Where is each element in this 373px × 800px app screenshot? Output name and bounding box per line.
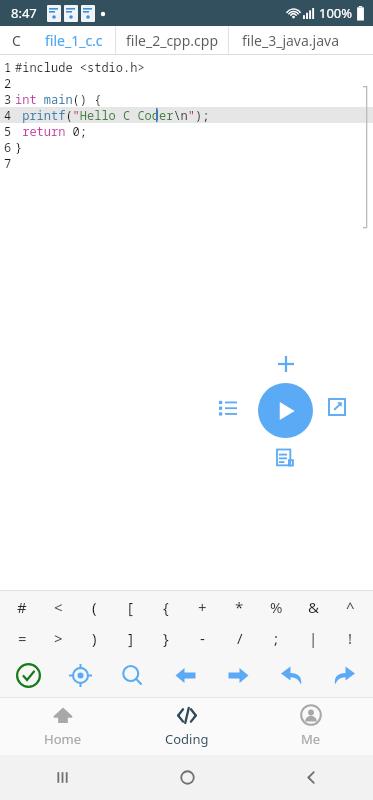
button[interactable]: Run: [258, 383, 313, 438]
button[interactable]: Confirm: [2, 653, 54, 697]
button[interactable]: C: [0, 26, 32, 55]
button[interactable]: Search: [106, 653, 159, 697]
staticText: -: [200, 628, 205, 648]
button[interactable]: #: [4, 591, 40, 622]
button[interactable]: List: [215, 395, 241, 421]
button[interactable]: Me: [249, 697, 373, 755]
staticText: =: [18, 628, 27, 648]
button[interactable]: ): [76, 622, 112, 653]
staticText: 6: [4, 139, 12, 155]
button[interactable]: Document: [272, 445, 298, 471]
staticText: 4: [4, 107, 12, 123]
button[interactable]: Back: [249, 755, 373, 800]
staticText: %: [270, 597, 283, 617]
button[interactable]: Move right: [212, 653, 265, 697]
staticText: Coding: [165, 730, 209, 748]
button[interactable]: (: [76, 591, 112, 622]
button[interactable]: -: [184, 622, 221, 653]
staticText: 5: [4, 123, 12, 139]
staticText: +: [198, 597, 207, 617]
staticText: }: [163, 628, 169, 648]
staticText: file_2_cpp.cpp: [126, 31, 219, 50]
staticText: file_3_java.java: [242, 31, 339, 50]
staticText: }: [15, 139, 23, 155]
button[interactable]: &: [295, 591, 332, 622]
button[interactable]: Undo: [265, 653, 318, 697]
staticText: ]: [128, 628, 133, 648]
staticText: Home: [44, 730, 81, 748]
staticText: Me: [301, 730, 321, 748]
staticText: *: [235, 597, 244, 617]
button[interactable]: =: [4, 622, 40, 653]
button[interactable]: file_2_cpp.cpp: [116, 26, 228, 55]
staticText: 8:47: [11, 4, 37, 22]
staticText: 3: [4, 91, 12, 107]
button[interactable]: +: [184, 591, 221, 622]
button[interactable]: !: [332, 622, 369, 653]
button[interactable]: %: [258, 591, 295, 622]
button[interactable]: file_3_java.java: [229, 26, 351, 55]
button[interactable]: Coding: [125, 697, 249, 755]
button[interactable]: <: [40, 591, 76, 622]
staticText: int main() {: [15, 91, 102, 107]
staticText: C: [12, 31, 21, 50]
button[interactable]: Move left: [159, 653, 212, 697]
staticText: /: [237, 628, 243, 648]
staticText: #include <stdio.h>: [15, 59, 145, 75]
staticText: &: [308, 597, 319, 617]
staticText: 7: [4, 155, 12, 171]
button[interactable]: /: [221, 622, 258, 653]
button[interactable]: Redo: [318, 653, 371, 697]
staticText: ^: [346, 597, 355, 617]
staticText: |: [309, 628, 318, 648]
staticText: return 0;: [15, 123, 88, 139]
staticText: printf("Hello C Coder\n");: [15, 107, 210, 123]
staticText: >: [54, 628, 63, 648]
staticText: ): [92, 628, 97, 648]
staticText: 1: [4, 59, 12, 75]
button[interactable]: [: [112, 591, 148, 622]
button[interactable]: Open externally: [324, 394, 350, 420]
button[interactable]: ;: [258, 622, 295, 653]
staticText: #: [17, 597, 27, 617]
staticText: [: [128, 597, 133, 617]
staticText: {: [163, 597, 169, 617]
button[interactable]: ]: [112, 622, 148, 653]
button[interactable]: Add: [274, 352, 298, 376]
staticText: 100%: [319, 4, 353, 22]
button[interactable]: |: [295, 622, 332, 653]
staticText: file_1_c.c: [45, 31, 103, 50]
staticText: ;: [274, 628, 279, 648]
staticText: (: [92, 597, 97, 617]
button[interactable]: {: [148, 591, 184, 622]
button[interactable]: }: [148, 622, 184, 653]
button[interactable]: *: [221, 591, 258, 622]
staticText: <: [54, 597, 63, 617]
button[interactable]: Home: [125, 755, 249, 800]
button[interactable]: Home: [0, 697, 125, 755]
staticText: !: [348, 628, 353, 648]
button[interactable]: file_1_c.c: [32, 26, 115, 55]
button[interactable]: ^: [332, 591, 369, 622]
button[interactable]: Locate: [54, 653, 106, 697]
staticText: 2: [4, 75, 12, 91]
button[interactable]: >: [40, 622, 76, 653]
button[interactable]: Recents: [0, 755, 125, 800]
